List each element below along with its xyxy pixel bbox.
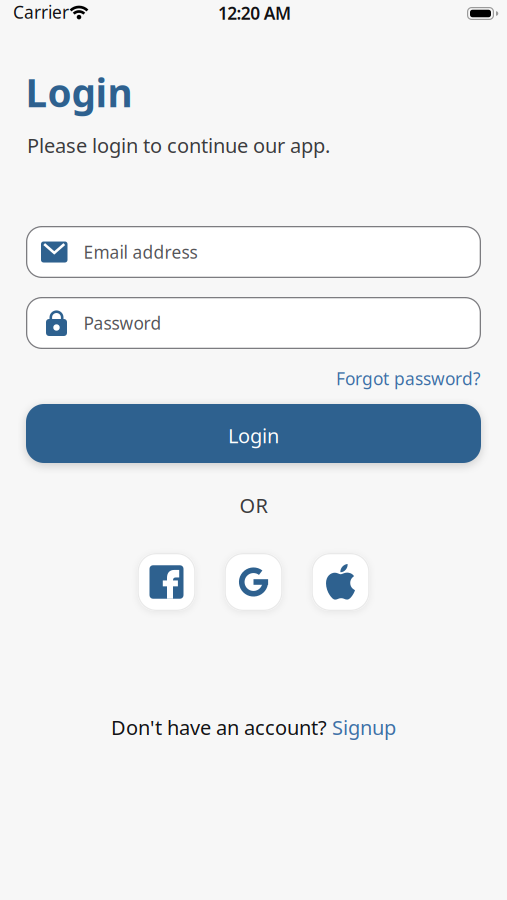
staticText: Signup	[332, 714, 396, 741]
button[interactable]: Continue with Google	[224, 553, 282, 611]
button[interactable]: Continue with Apple	[311, 553, 369, 611]
button[interactable]: Signup	[332, 714, 396, 741]
staticText: Forgot password?	[336, 367, 481, 390]
staticText: Login	[25, 66, 132, 118]
button[interactable]: Forgot password?	[336, 367, 481, 390]
button[interactable]: Login	[26, 404, 481, 463]
staticText: Email address	[83, 240, 197, 263]
staticText: 12:20 AM	[218, 1, 291, 24]
button[interactable]: Password	[26, 297, 481, 349]
button[interactable]: Email address	[26, 226, 481, 278]
staticText: OR	[239, 492, 267, 519]
staticText: Carrier	[13, 0, 69, 23]
staticText: Password	[83, 311, 161, 334]
staticText: Please login to continue our app.	[27, 132, 330, 159]
button[interactable]: Continue with Facebook	[137, 553, 195, 611]
staticText: Don't have an account?	[111, 714, 327, 741]
staticText: Login	[228, 422, 279, 449]
